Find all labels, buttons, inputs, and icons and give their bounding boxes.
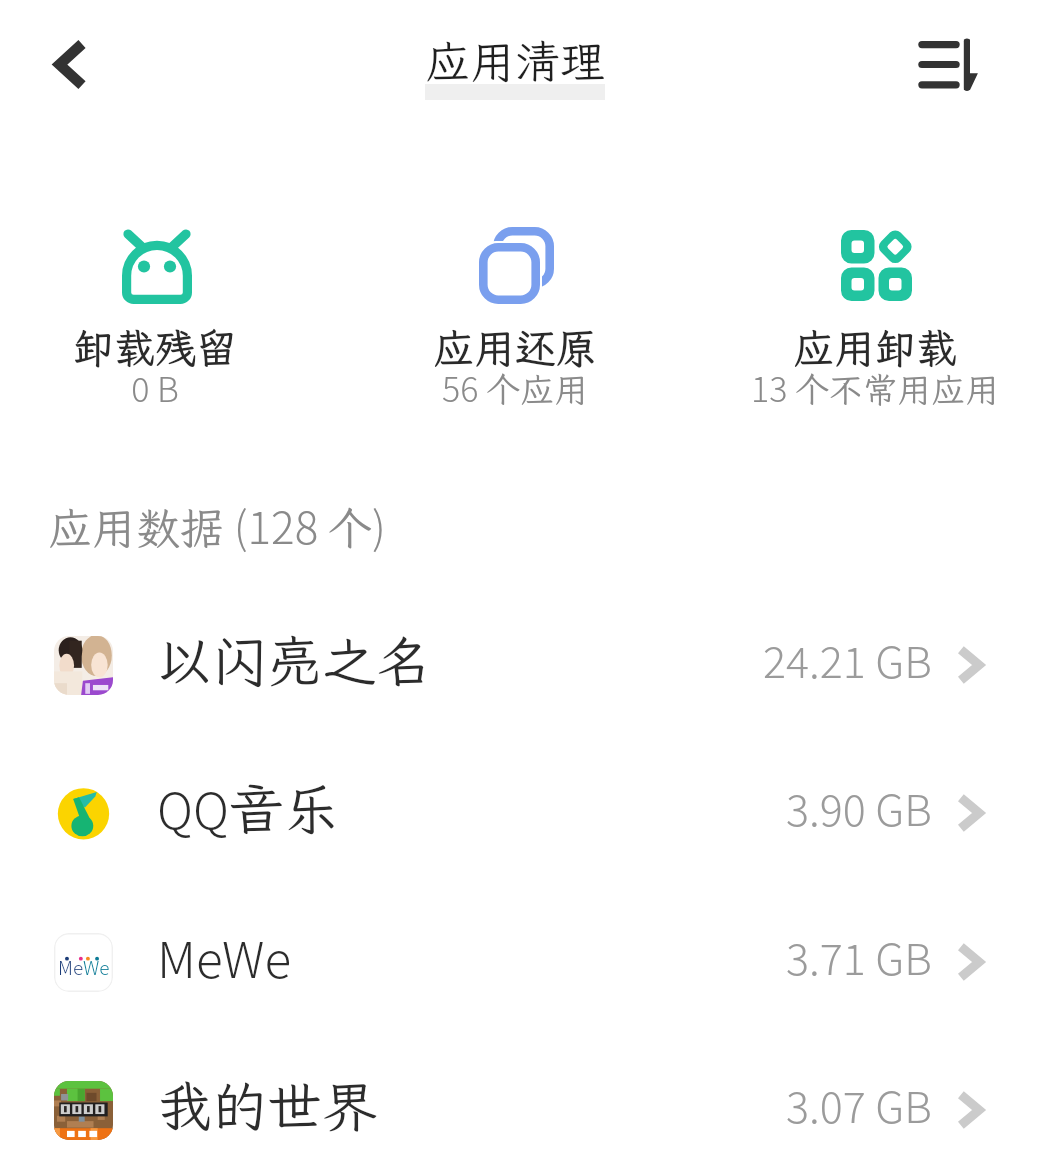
staticText: 24.21 GB bbox=[763, 628, 932, 690]
staticText: MeWe bbox=[157, 921, 292, 993]
staticText: 应用还原 bbox=[433, 321, 597, 375]
button[interactable]: Back bbox=[22, 20, 114, 110]
staticText: 13 个不常用应用 bbox=[751, 363, 999, 412]
button[interactable]: MeWe bbox=[0, 888, 1054, 1036]
staticText: 我的世界 bbox=[157, 1069, 378, 1141]
staticText: MeWe bbox=[58, 953, 110, 981]
button[interactable]: 我的世界 bbox=[0, 1036, 1054, 1176]
staticText: 0 B bbox=[131, 363, 179, 412]
button[interactable]: 应用还原 bbox=[350, 196, 680, 424]
staticText: 以闪亮之名 bbox=[157, 624, 433, 696]
button[interactable]: QQ音乐 bbox=[0, 739, 1054, 887]
button[interactable]: 应用卸载 bbox=[710, 196, 1040, 424]
staticText: 应用数据 (128 个) bbox=[48, 493, 386, 557]
staticText: 56 个应用 bbox=[442, 363, 588, 412]
staticText: 3.07 GB bbox=[786, 1073, 932, 1135]
button[interactable]: 以闪亮之名 bbox=[0, 591, 1054, 739]
staticText: 应用卸载 bbox=[793, 321, 957, 375]
staticText: QQ音乐 bbox=[157, 772, 339, 845]
staticText: 3.90 GB bbox=[786, 776, 932, 838]
button[interactable]: 卸载残留 bbox=[0, 196, 320, 424]
staticText: 卸载残留 bbox=[73, 321, 237, 375]
staticText: 应用清理 bbox=[425, 32, 606, 91]
button[interactable]: Sort bbox=[912, 30, 982, 96]
staticText: 3.71 GB bbox=[786, 925, 932, 987]
